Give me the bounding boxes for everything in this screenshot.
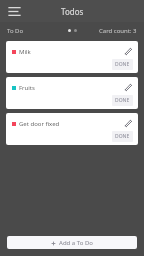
staticText: Milk <box>19 48 31 56</box>
button[interactable]: Edit Fruits <box>122 81 134 93</box>
staticText: Card count: 3 <box>99 27 137 35</box>
staticText: DONE <box>115 133 130 140</box>
button[interactable]: DONE <box>112 131 133 142</box>
staticText: Todos <box>61 6 84 17</box>
staticText: To Do <box>7 27 24 35</box>
button[interactable]: DONE <box>112 95 133 106</box>
staticText: DONE <box>115 61 130 68</box>
button[interactable]: Get door fixed <box>6 113 138 145</box>
button[interactable]: DONE <box>112 59 133 70</box>
staticText: DONE <box>115 97 130 104</box>
staticText: Get door fixed <box>19 120 60 128</box>
staticText: Add a To Do <box>59 239 93 247</box>
button[interactable]: Edit Milk <box>122 45 134 57</box>
button[interactable]: Fruits <box>6 77 138 109</box>
button[interactable]: Milk <box>6 41 138 73</box>
button[interactable]: Open navigation menu <box>5 2 23 20</box>
staticText: Fruits <box>19 84 35 92</box>
button[interactable]: Edit Get door fixed <box>122 117 134 129</box>
button[interactable]: Add a To Do <box>7 236 137 249</box>
